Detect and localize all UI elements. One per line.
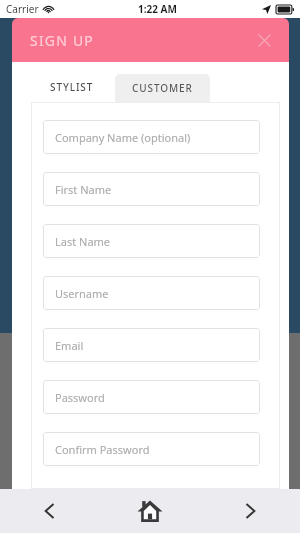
button[interactable]: Back	[0, 489, 100, 533]
button[interactable]: SIGN UP	[30, 31, 95, 50]
button[interactable]: CUSTOMER	[115, 74, 210, 102]
button[interactable]: Company Name (optional)	[43, 120, 260, 154]
button[interactable]: Forward	[200, 489, 300, 533]
staticText: Carrier	[6, 2, 39, 16]
staticText: SIGN UP	[30, 31, 95, 50]
staticText: STYLIST	[50, 80, 94, 94]
staticText: Confirm Password	[55, 442, 150, 457]
button[interactable]: Username	[43, 276, 260, 310]
staticText: Last Name	[55, 234, 111, 249]
button[interactable]: Close	[251, 27, 277, 53]
button[interactable]: Email	[43, 328, 260, 362]
button[interactable]: First Name	[43, 172, 260, 206]
button[interactable]: STYLIST	[31, 71, 112, 102]
staticText: Username	[55, 286, 109, 301]
staticText: Password	[55, 390, 105, 405]
staticText: Email	[55, 338, 84, 353]
staticText: First Name	[55, 182, 112, 197]
staticText: Company Name (optional)	[55, 130, 191, 145]
button[interactable]: Password	[43, 380, 260, 414]
button[interactable]: Last Name	[43, 224, 260, 258]
staticText: 1:22 AM	[138, 2, 177, 16]
button[interactable]: Confirm Password	[43, 432, 260, 466]
staticText: CUSTOMER	[132, 81, 193, 95]
button[interactable]: Home	[100, 489, 200, 533]
